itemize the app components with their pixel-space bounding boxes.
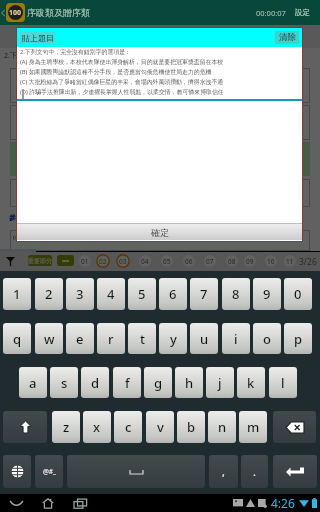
staticText: 3 <box>76 285 84 303</box>
staticText: z <box>63 418 70 436</box>
staticText: c <box>125 418 132 436</box>
button[interactable]: b <box>177 411 205 443</box>
button[interactable]: 清除 <box>275 31 299 44</box>
button[interactable]: Back <box>0 0 6 25</box>
button[interactable]: k <box>237 367 265 398</box>
button[interactable]: Home <box>38 494 58 512</box>
button[interactable]: 09 <box>243 254 257 268</box>
staticText: 5 <box>138 285 146 303</box>
button[interactable]: v <box>146 411 174 443</box>
button[interactable]: 貼上題目 <box>20 32 55 44</box>
button[interactable]: g <box>144 367 172 398</box>
button[interactable]: 10 <box>264 254 278 268</box>
staticText: 01 <box>81 257 89 266</box>
button[interactable]: q <box>3 323 31 354</box>
button[interactable]: j <box>206 367 234 398</box>
button[interactable] <box>10 142 310 176</box>
button[interactable] <box>10 105 310 140</box>
button[interactable]: 3 <box>66 278 94 310</box>
button[interactable]: y <box>159 323 187 354</box>
button[interactable]: 7 <box>190 278 218 310</box>
staticText: 參考答案：(A)(C) <box>9 213 63 223</box>
button[interactable]: i <box>222 323 250 354</box>
staticText: o <box>263 330 271 348</box>
staticText: e <box>76 330 84 348</box>
staticText: r <box>108 330 114 348</box>
button[interactable]: (A)渾→運，(B)迫→勢，(D)擢→擅 <box>10 230 310 251</box>
staticText: 設定 <box>295 8 310 17</box>
staticText: w <box>44 330 55 348</box>
staticText: . <box>253 464 256 479</box>
button[interactable]: 07 <box>203 254 217 268</box>
button[interactable]: 08 <box>225 254 239 268</box>
button[interactable]: w <box>35 323 63 354</box>
button[interactable]: h <box>175 367 203 398</box>
button[interactable]: f <box>113 367 141 398</box>
button[interactable]: 8 <box>222 278 250 310</box>
button[interactable]: t <box>128 323 156 354</box>
button[interactable]: 05 <box>160 254 174 268</box>
button[interactable]: 03 <box>116 254 130 268</box>
button[interactable]: d <box>81 367 109 398</box>
staticText: b <box>187 418 196 436</box>
staticText: 08 <box>228 257 236 266</box>
button[interactable]: Space <box>67 455 205 488</box>
button[interactable]: Shift <box>3 411 47 443</box>
staticText: a <box>29 374 37 392</box>
button[interactable]: 11 <box>283 254 297 268</box>
button[interactable]: 確定 <box>17 224 302 240</box>
button[interactable]: Recent apps <box>70 494 90 512</box>
button[interactable]: u <box>190 323 218 354</box>
button[interactable]: n <box>208 411 236 443</box>
button[interactable]: 1 <box>3 278 31 310</box>
button[interactable]: 2 <box>35 278 63 310</box>
button[interactable]: e <box>66 323 94 354</box>
button[interactable]: 04 <box>138 254 152 268</box>
button[interactable]: 06 <box>182 254 196 268</box>
button[interactable]: z <box>52 411 80 443</box>
button[interactable] <box>10 179 310 207</box>
button[interactable]: 6 <box>159 278 187 310</box>
button[interactable]: 4 <box>97 278 125 310</box>
button[interactable]: 設定 <box>295 0 310 25</box>
staticText: q <box>13 330 22 348</box>
staticText: p <box>294 330 303 348</box>
button[interactable] <box>10 68 310 103</box>
staticText: f <box>125 374 130 392</box>
button[interactable]: a <box>19 367 47 398</box>
button[interactable]: l <box>269 367 297 398</box>
staticText: g <box>154 374 163 392</box>
button[interactable]: x <box>83 411 111 443</box>
staticText: v <box>157 418 164 436</box>
button[interactable]: c <box>114 411 142 443</box>
button[interactable]: Backspace <box>273 411 316 443</box>
button[interactable]: Period <box>241 455 268 488</box>
button[interactable]: 0 <box>284 278 312 310</box>
staticText: 11 <box>286 257 294 266</box>
button[interactable]: Symbols <box>35 455 63 488</box>
staticText: m <box>247 418 260 436</box>
button[interactable]: o <box>253 323 281 354</box>
staticText: l <box>281 374 285 392</box>
staticText: 清除 <box>279 32 296 43</box>
button[interactable]: Enter <box>273 455 317 488</box>
button[interactable]: Hide keyboard <box>6 494 26 512</box>
button[interactable]: 重要部分 <box>28 255 52 266</box>
staticText: 確定 <box>151 227 169 238</box>
button[interactable]: App icon <box>6 3 25 22</box>
button[interactable]: Filter <box>3 252 18 271</box>
button[interactable]: 9 <box>253 278 281 310</box>
button[interactable]: 5 <box>128 278 156 310</box>
button[interactable]: Language <box>3 455 31 488</box>
button[interactable] <box>57 255 74 266</box>
button[interactable]: 02 <box>96 254 110 268</box>
button[interactable]: s <box>50 367 78 398</box>
button[interactable]: m <box>239 411 267 443</box>
button[interactable]: 01 <box>78 254 92 268</box>
staticText: 序跋類及贈序類 <box>27 7 90 18</box>
button[interactable]: p <box>284 323 312 354</box>
staticText: s <box>61 374 68 392</box>
button[interactable]: Comma <box>209 455 238 488</box>
button[interactable]: r <box>97 323 125 354</box>
staticText: u <box>200 330 209 348</box>
